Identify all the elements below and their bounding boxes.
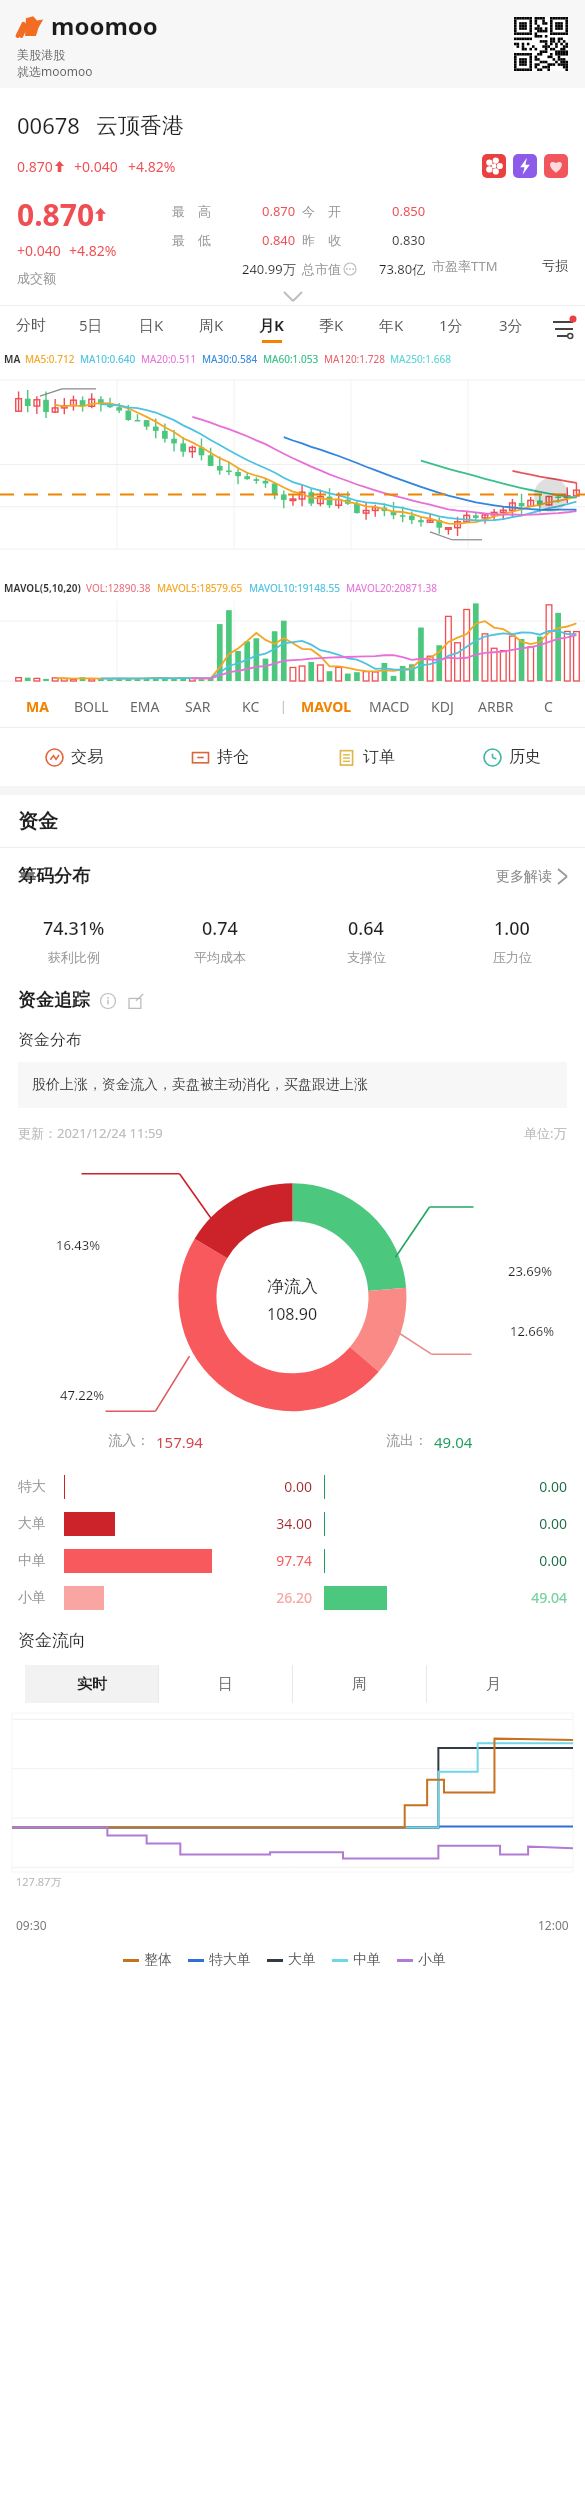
button[interactable]: 季K	[301, 306, 361, 352]
button[interactable]: 年K	[361, 306, 421, 352]
staticText: EMA	[130, 697, 160, 716]
staticText: MAVOL5:18579.65	[157, 581, 243, 595]
button[interactable]: badge	[544, 154, 568, 178]
button[interactable]: 设置	[541, 306, 585, 352]
staticText: 108.90	[267, 1303, 318, 1325]
button[interactable]: EMA	[118, 685, 171, 727]
button[interactable]: C	[522, 685, 575, 727]
button[interactable]: 月K	[241, 306, 301, 352]
staticText: 特大单	[209, 1951, 251, 1969]
staticText: 0.870	[17, 157, 53, 176]
staticText: 特大	[18, 1478, 58, 1496]
button[interactable]: MA	[10, 685, 64, 727]
staticText: 49.04	[434, 1432, 473, 1452]
staticText: 00678	[17, 110, 80, 140]
staticText: 0.850	[392, 202, 426, 220]
staticText: MA20:0.511	[141, 352, 197, 366]
staticText: 中单	[18, 1552, 58, 1570]
staticText: 实时	[77, 1675, 107, 1694]
staticText: 74.31%	[43, 916, 105, 941]
staticText: 资金流向	[18, 1630, 86, 1651]
staticText: 97.74	[254, 1551, 312, 1570]
staticText: BOLL	[74, 697, 109, 716]
staticText: 日K	[139, 315, 164, 335]
staticText: 持仓	[217, 747, 249, 767]
button[interactable]: 月	[427, 1665, 560, 1703]
staticText: 就选moomoo	[17, 63, 93, 79]
button[interactable]: KDJ	[416, 685, 469, 727]
staticText: MA	[26, 697, 49, 716]
staticText: 73.80亿	[379, 260, 426, 278]
staticText: 历史	[509, 747, 541, 767]
staticText: 亏损	[542, 257, 568, 273]
staticText: moomoo	[51, 9, 158, 42]
staticText: 支撑位	[347, 949, 386, 965]
button[interactable]: 订单	[293, 728, 439, 786]
staticText: 美股港股	[17, 47, 65, 62]
staticText: 市盈率TTM	[432, 257, 498, 275]
staticText: MA120:1.728	[324, 352, 385, 366]
staticText: 云顶香港	[96, 112, 184, 140]
button[interactable]: 日K	[121, 306, 181, 352]
button[interactable]: 持仓	[147, 728, 293, 786]
button[interactable]: 周	[293, 1665, 426, 1703]
staticText: 更多解读	[496, 868, 552, 886]
staticText: 12:00	[538, 1917, 569, 1933]
staticText: 小单	[418, 1951, 446, 1969]
staticText: 26.20	[254, 1588, 312, 1607]
staticText: 5日	[79, 315, 103, 335]
staticText: 0.64	[348, 916, 384, 941]
button[interactable]: 5日	[61, 306, 121, 352]
staticText: 3分	[499, 315, 523, 335]
staticText: 1分	[439, 315, 463, 335]
button[interactable]: 周K	[181, 306, 241, 352]
staticText: 23.69%	[508, 1262, 553, 1280]
staticText: 12.66%	[510, 1322, 555, 1340]
button[interactable]: KC	[224, 685, 277, 727]
button[interactable]: badge	[482, 154, 506, 178]
staticText: C	[544, 697, 553, 716]
button[interactable]: badge	[513, 154, 537, 178]
staticText: MACD	[369, 697, 410, 716]
button[interactable]: 说明	[100, 993, 116, 1009]
staticText: 流入：	[108, 1432, 150, 1450]
staticText: MA	[4, 352, 21, 366]
staticText: MA250:1.668	[390, 352, 451, 366]
staticText: 成交额	[17, 270, 56, 286]
staticText: 0.840	[262, 231, 296, 249]
button[interactable]: SAR	[171, 685, 224, 727]
button[interactable]: 历史	[439, 728, 585, 786]
staticText: 交易	[71, 747, 103, 767]
button[interactable]: ARBR	[469, 685, 522, 727]
staticText: 订单	[363, 747, 395, 767]
staticText: 季K	[319, 315, 344, 335]
staticText: 筹码分布	[18, 865, 90, 888]
button[interactable]: MAVOL	[289, 685, 363, 727]
button[interactable]: 交易	[0, 728, 147, 786]
staticText: 127.87万	[16, 1874, 62, 1889]
staticText: +0.040	[17, 241, 61, 260]
staticText: MAVOL	[301, 697, 352, 716]
staticText: +4.82%	[128, 157, 176, 176]
button[interactable]: 1分	[421, 306, 481, 352]
button[interactable]: 分时	[0, 306, 61, 352]
button[interactable]: 实时	[25, 1665, 158, 1703]
staticText: SAR	[185, 697, 211, 716]
staticText: 月K	[259, 315, 284, 335]
button[interactable]: MACD	[363, 685, 416, 727]
staticText: 分时	[16, 316, 46, 335]
button[interactable]: BOLL	[64, 685, 118, 727]
button[interactable]: 分享	[128, 993, 144, 1009]
staticText: 流出：	[386, 1432, 428, 1450]
staticText: KDJ	[431, 697, 454, 716]
button[interactable]: 筹码分布	[18, 848, 567, 904]
staticText: 今 开	[302, 202, 341, 220]
staticText: 资金追踪	[18, 989, 90, 1012]
staticText: 1.00	[494, 916, 530, 941]
staticText: 日	[218, 1675, 233, 1694]
staticText: 昨 收	[302, 231, 341, 249]
staticText: MAVOL20:20871.38	[346, 581, 437, 595]
staticText: 大单	[288, 1951, 316, 1969]
button[interactable]: 日	[159, 1665, 292, 1703]
button[interactable]: 3分	[481, 306, 541, 352]
